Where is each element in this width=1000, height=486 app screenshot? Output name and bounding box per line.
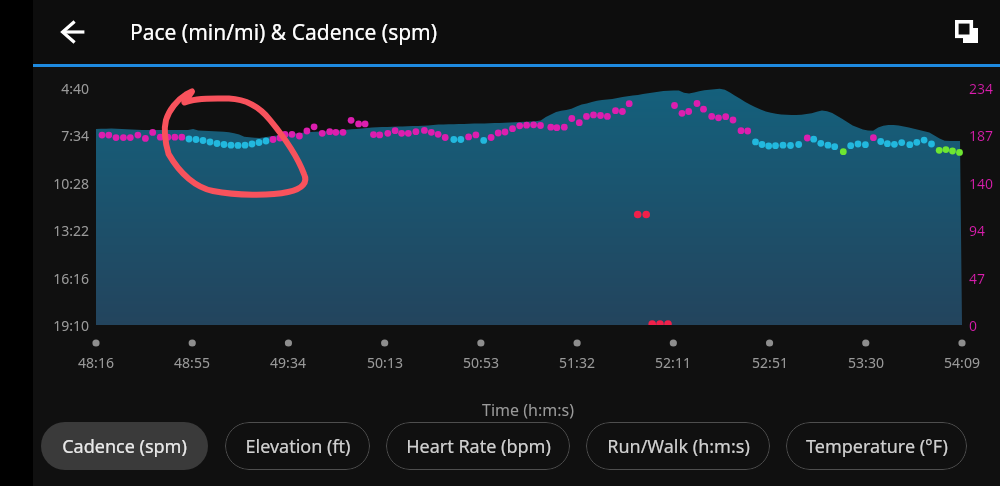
staticText: 50:53 (463, 353, 499, 372)
staticText: 4:40 (61, 79, 89, 98)
button[interactable]: Heart Rate (bpm) (386, 422, 570, 470)
staticText: 140 (969, 174, 994, 193)
staticText: 10:28 (53, 174, 89, 193)
staticText: 52:11 (655, 353, 691, 372)
staticText: Run/Walk (h:m:s) (607, 434, 750, 459)
staticText: 7:34 (61, 126, 89, 145)
staticText: Elevation (ft) (245, 434, 351, 459)
staticText: 48:55 (174, 353, 210, 372)
staticText: 13:22 (53, 221, 89, 240)
staticText: 53:30 (848, 353, 884, 372)
staticText: Cadence (spm) (62, 434, 187, 459)
staticText: 51:32 (559, 353, 595, 372)
staticText: 50:13 (367, 353, 403, 372)
staticText: Time (h:m:s) (482, 399, 574, 421)
staticText: 187 (969, 126, 994, 145)
staticText: Pace (min/mi) & Cadence (spm) (130, 18, 438, 47)
button[interactable]: Back (45, 4, 101, 60)
staticText: 94 (969, 221, 986, 240)
button[interactable]: Temperature (°F) (786, 422, 967, 470)
button[interactable]: Run/Walk (h:m:s) (586, 422, 770, 470)
staticText: 47 (969, 269, 986, 288)
staticText: Temperature (°F) (806, 434, 948, 459)
staticText: 0 (969, 316, 978, 335)
staticText: 52:51 (752, 353, 788, 372)
staticText: Heart Rate (bpm) (406, 434, 551, 459)
staticText: 19:10 (53, 316, 89, 335)
staticText: 49:34 (270, 353, 306, 372)
staticText: 48:16 (78, 353, 114, 372)
staticText: 234 (969, 79, 994, 98)
staticText: 16:16 (53, 269, 89, 288)
staticText: 54:09 (944, 353, 980, 372)
button[interactable]: Compare activities (939, 4, 995, 60)
button[interactable]: Elevation (ft) (225, 422, 370, 470)
button[interactable]: Cadence (spm) (41, 422, 208, 470)
